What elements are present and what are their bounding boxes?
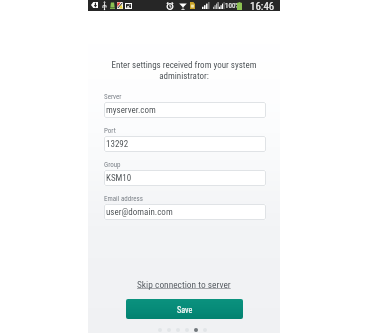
button[interactable]: 13292 [104, 136, 266, 152]
button[interactable]: user@domain.com [104, 204, 266, 220]
staticText: Server [104, 93, 122, 101]
button[interactable]: Skip connection to server [137, 279, 231, 290]
staticText: 16:46 [250, 0, 275, 13]
button[interactable]: Save [126, 299, 243, 319]
staticText: 13292 [106, 139, 129, 150]
staticText: Email address [104, 195, 143, 203]
staticText: user@domain.com [106, 207, 173, 218]
button[interactable]: myserver.com [104, 102, 266, 118]
button[interactable]: KSM10 [104, 170, 266, 186]
staticText: KSM10 [106, 173, 132, 184]
staticText: 100% [225, 2, 240, 10]
staticText: Group [104, 161, 121, 169]
staticText: Save [177, 305, 193, 315]
staticText: Enter settings received from your system… [98, 60, 270, 82]
staticText: Port [104, 127, 116, 135]
staticText: myserver.com [106, 105, 156, 116]
